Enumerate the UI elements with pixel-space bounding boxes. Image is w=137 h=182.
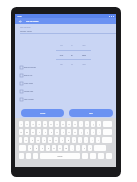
button[interactable]: Cross Meter bbox=[15, 79, 116, 87]
button[interactable]: t bbox=[43, 129, 47, 135]
staticText: + bbox=[86, 123, 88, 125]
staticText: 2021 bbox=[77, 45, 91, 47]
button[interactable]: ; bbox=[78, 137, 82, 143]
button[interactable] bbox=[26, 153, 31, 159]
button[interactable]: s bbox=[30, 137, 34, 143]
button[interactable] bbox=[106, 153, 112, 159]
staticText: i bbox=[63, 131, 64, 133]
button[interactable]: h bbox=[54, 137, 58, 143]
button[interactable]: } bbox=[85, 129, 89, 135]
button[interactable] bbox=[19, 153, 24, 159]
button[interactable]: p bbox=[73, 129, 77, 135]
button[interactable]: " bbox=[90, 137, 94, 143]
staticText: n bbox=[59, 147, 61, 149]
staticText: Cross Meter bbox=[24, 82, 34, 84]
button[interactable]: Seal Number bbox=[15, 95, 116, 103]
button[interactable]: 2 bbox=[25, 121, 29, 127]
staticText: [ bbox=[93, 123, 94, 125]
staticText: m bbox=[65, 147, 67, 149]
button[interactable]: Device Installed bbox=[15, 63, 116, 71]
button[interactable]: 9 bbox=[67, 121, 71, 127]
button[interactable]: Cancel bbox=[21, 109, 64, 117]
button[interactable]: a bbox=[24, 137, 28, 143]
staticText: 2022 bbox=[77, 54, 91, 56]
staticText: d bbox=[37, 139, 39, 141]
button[interactable]: d bbox=[36, 137, 40, 143]
button[interactable]: y bbox=[49, 129, 53, 135]
button[interactable]: z bbox=[28, 145, 32, 151]
button[interactable]: / bbox=[96, 137, 100, 143]
button[interactable]: 3 bbox=[31, 121, 35, 127]
button[interactable]: 5 bbox=[43, 121, 47, 127]
button[interactable]: | bbox=[91, 129, 95, 135]
staticText: Cancel bbox=[40, 112, 46, 114]
button[interactable]: English bbox=[40, 153, 80, 159]
button[interactable] bbox=[19, 137, 22, 143]
button[interactable]: o bbox=[67, 129, 71, 135]
button[interactable] bbox=[33, 153, 38, 159]
button[interactable]: w bbox=[25, 129, 29, 135]
button[interactable]: b bbox=[52, 145, 56, 151]
staticText: " bbox=[92, 139, 93, 141]
button[interactable]: n bbox=[58, 145, 62, 151]
button[interactable]: . bbox=[76, 145, 80, 151]
button[interactable]: i bbox=[61, 129, 65, 135]
staticText: g bbox=[49, 139, 51, 141]
button[interactable]: k bbox=[66, 137, 70, 143]
button[interactable]: : bbox=[97, 129, 101, 135]
button[interactable]: 6 bbox=[49, 121, 53, 127]
button[interactable]: + bbox=[85, 121, 89, 127]
button[interactable]: ] bbox=[97, 121, 101, 127]
button[interactable]: u bbox=[55, 129, 59, 135]
staticText: u bbox=[56, 131, 58, 133]
button[interactable]: Tamper Seal bbox=[15, 87, 116, 95]
button[interactable]: x bbox=[34, 145, 38, 151]
button[interactable]: [ bbox=[91, 121, 95, 127]
button[interactable] bbox=[90, 153, 96, 159]
button[interactable] bbox=[98, 153, 104, 159]
button[interactable]: Back bbox=[15, 18, 26, 24]
button[interactable]: , bbox=[70, 145, 74, 151]
staticText: q bbox=[20, 131, 22, 133]
button[interactable]: 8 bbox=[61, 121, 65, 127]
button[interactable]: e bbox=[31, 129, 35, 135]
button[interactable]: v bbox=[46, 145, 50, 151]
button[interactable]: Device Log bbox=[15, 71, 116, 79]
staticText: English bbox=[57, 155, 63, 157]
button[interactable]: l bbox=[72, 137, 76, 143]
button[interactable]: 7 bbox=[55, 121, 59, 127]
staticText: 4 bbox=[38, 123, 40, 125]
button[interactable]: f bbox=[42, 137, 46, 143]
staticText: f bbox=[44, 139, 45, 141]
button[interactable]: r bbox=[37, 129, 41, 135]
staticText: e bbox=[32, 131, 34, 133]
staticText: 2 bbox=[26, 123, 28, 125]
button[interactable]: 4 bbox=[37, 121, 41, 127]
button[interactable] bbox=[82, 153, 88, 159]
staticText: y bbox=[51, 131, 52, 133]
button[interactable]: ' bbox=[84, 137, 88, 143]
button[interactable]: ? bbox=[82, 145, 86, 151]
staticText: 1 bbox=[20, 123, 22, 125]
button[interactable]: j bbox=[60, 137, 64, 143]
staticText: c bbox=[42, 147, 43, 149]
button[interactable]: { bbox=[79, 129, 83, 135]
button[interactable]: m bbox=[64, 145, 68, 151]
staticText: Dec bbox=[56, 64, 67, 66]
button[interactable]: c bbox=[40, 145, 44, 151]
button[interactable]: 0 bbox=[73, 121, 77, 127]
button[interactable]: ! bbox=[88, 145, 92, 151]
button[interactable]: q bbox=[19, 129, 23, 135]
button[interactable]: Save bbox=[69, 109, 113, 117]
staticText: 01 bbox=[67, 54, 77, 56]
button[interactable]: g bbox=[48, 137, 52, 143]
staticText: 2023 bbox=[77, 64, 91, 66]
button[interactable]: - bbox=[79, 121, 83, 127]
button[interactable]: 1 bbox=[19, 121, 23, 127]
staticText: j bbox=[62, 139, 63, 141]
